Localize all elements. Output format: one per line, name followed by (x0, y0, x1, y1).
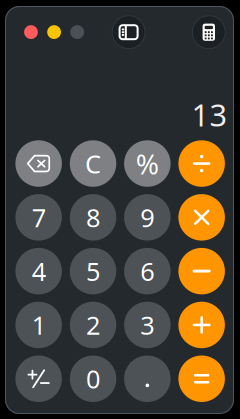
button[interactable]: Calculator Mode (191, 15, 226, 49)
button[interactable]: Equals (178, 355, 225, 402)
staticText: 5 (86, 254, 100, 288)
button[interactable]: Add (178, 302, 225, 348)
staticText: 7 (32, 200, 46, 234)
button[interactable]: 4 (15, 248, 62, 294)
button[interactable]: Divide (178, 140, 225, 187)
staticText: 8 (86, 200, 100, 234)
staticText: 13 (191, 94, 227, 135)
button[interactable]: Clear (69, 140, 117, 187)
staticText: 9 (140, 200, 154, 234)
button[interactable]: Decimal Point (124, 355, 171, 402)
button[interactable]: Toggle Sidebar (111, 15, 146, 49)
staticText: 2 (86, 308, 100, 342)
button[interactable]: 7 (15, 194, 62, 241)
button[interactable]: Multiply (178, 194, 225, 241)
staticText: 1 (32, 308, 46, 342)
button[interactable]: 0 (69, 355, 117, 402)
button[interactable]: Subtract (178, 248, 225, 294)
button[interactable]: 1 (15, 302, 62, 348)
staticText: % (136, 145, 159, 182)
staticText: C (85, 147, 101, 180)
button[interactable]: 5 (69, 248, 117, 294)
button[interactable]: 3 (124, 302, 171, 348)
button[interactable]: 6 (124, 248, 171, 294)
staticText: 4 (32, 254, 46, 288)
staticText: 0 (86, 362, 100, 395)
button[interactable]: 2 (69, 302, 117, 348)
button[interactable]: Plus Minus (15, 355, 62, 402)
staticText: 6 (140, 254, 154, 288)
staticText: 3 (140, 308, 154, 342)
button[interactable]: 9 (124, 194, 171, 241)
button[interactable]: 8 (69, 194, 117, 241)
button[interactable]: Delete (15, 140, 62, 187)
button[interactable]: Percent (124, 140, 171, 187)
